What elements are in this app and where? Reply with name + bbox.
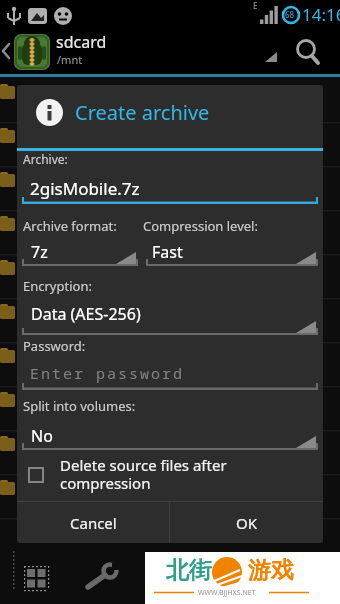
staticText: Split into volumes:: [23, 397, 136, 415]
staticText: 游戏: [248, 556, 294, 585]
button[interactable]: Data (AES-256): [22, 299, 318, 335]
staticText: sdcard: [56, 31, 107, 53]
staticText: Delete source files after compression: [60, 455, 227, 494]
staticText: Archive format:: [23, 217, 117, 235]
staticText: Compression level:: [143, 217, 258, 235]
staticText: 14:16: [302, 3, 340, 26]
staticText: Archive:: [23, 151, 68, 167]
button[interactable]: sdcard: [0, 30, 340, 74]
staticText: Fast: [152, 241, 183, 263]
staticText: /mnt: [57, 52, 83, 67]
button[interactable]: Cancel: [17, 502, 169, 543]
staticText: Create archive: [75, 99, 210, 126]
staticText: 68: [285, 9, 295, 20]
staticText: Password:: [23, 337, 86, 355]
staticText: Enter password: [30, 363, 185, 383]
staticText: Encryption:: [23, 277, 92, 295]
staticText: Cancel: [70, 513, 117, 533]
staticText: 北街: [166, 556, 212, 585]
button[interactable]: No: [22, 425, 318, 450]
button[interactable]: OK: [170, 502, 323, 543]
button[interactable]: Fast: [146, 240, 318, 266]
button[interactable]: Delete source files after compression: [28, 455, 308, 494]
button[interactable]: 7z: [22, 240, 138, 266]
staticText: WWW.BJJHXS.NET: [198, 588, 256, 598]
staticText: 7z: [31, 241, 48, 263]
staticText: E: [253, 0, 258, 11]
staticText: OK: [236, 513, 258, 533]
staticText: No: [31, 425, 53, 447]
staticText: Data (AES-256): [31, 303, 141, 325]
button[interactable]: 2gisMobile.7z: [30, 177, 140, 200]
